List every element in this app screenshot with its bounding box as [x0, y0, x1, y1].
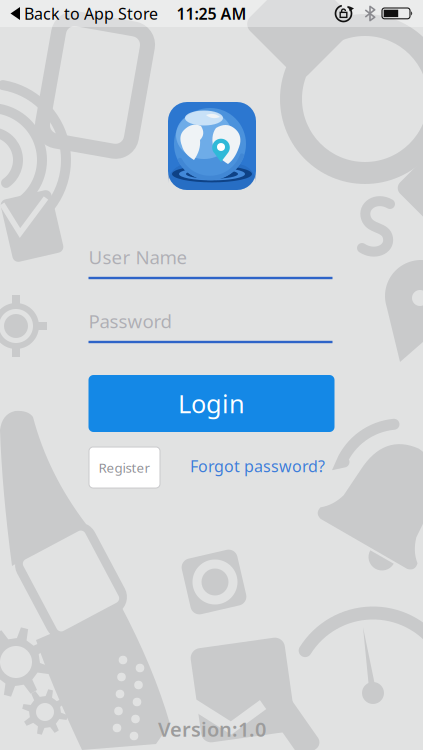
button[interactable]: Back to App Store [10, 3, 158, 24]
staticText: Password [88, 309, 171, 333]
staticText: Register [98, 459, 150, 476]
staticText: Version:1.0 [158, 716, 266, 742]
staticText: Login [178, 387, 245, 420]
staticText: User Name [88, 245, 187, 269]
button[interactable]: Register [89, 447, 160, 488]
staticText: 11:25 AM [176, 3, 246, 24]
staticText: Forgot password? [190, 455, 325, 477]
button[interactable]: Forgot password? [190, 455, 325, 477]
button[interactable]: Login [88, 375, 334, 432]
staticText: Back to App Store [24, 3, 158, 24]
